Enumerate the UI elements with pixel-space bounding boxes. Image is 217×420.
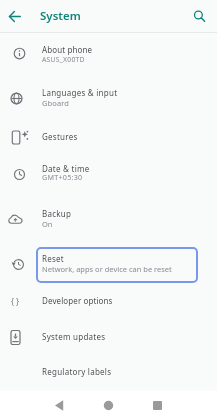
staticText: Regulatory labels xyxy=(42,366,112,377)
staticText: System xyxy=(40,8,81,24)
button[interactable]: Reset xyxy=(0,239,217,279)
button[interactable] xyxy=(151,399,164,412)
staticText: System updates xyxy=(42,331,106,342)
staticText: Languages & input xyxy=(42,87,118,98)
button[interactable]: Date & time xyxy=(0,149,217,189)
button[interactable] xyxy=(8,10,21,23)
staticText: { } xyxy=(11,296,20,307)
staticText: Developer options xyxy=(42,295,113,306)
button[interactable]: System updates xyxy=(0,316,217,356)
staticText: Gboard xyxy=(42,98,69,108)
staticText: About phone xyxy=(42,44,93,55)
button[interactable]: Gestures xyxy=(0,116,217,156)
button[interactable]: About phone xyxy=(0,30,217,70)
staticText: ASUS_X00TD xyxy=(42,55,85,64)
button[interactable] xyxy=(102,399,115,412)
staticText: Gestures xyxy=(42,131,78,142)
button[interactable] xyxy=(193,10,206,23)
button[interactable]: Backup xyxy=(0,194,217,234)
button[interactable]: Regulatory labels xyxy=(0,351,217,391)
staticText: Reset xyxy=(42,253,64,264)
button[interactable] xyxy=(53,399,66,412)
staticText: GMT+05:30 xyxy=(42,172,83,182)
staticText: Network, apps or device can be reset xyxy=(42,264,172,274)
button[interactable]: Languages & input xyxy=(0,73,217,113)
staticText: Backup xyxy=(42,208,72,219)
staticText: Date & time xyxy=(42,163,90,174)
staticText: On xyxy=(42,219,53,229)
button[interactable]: { } xyxy=(0,280,217,320)
